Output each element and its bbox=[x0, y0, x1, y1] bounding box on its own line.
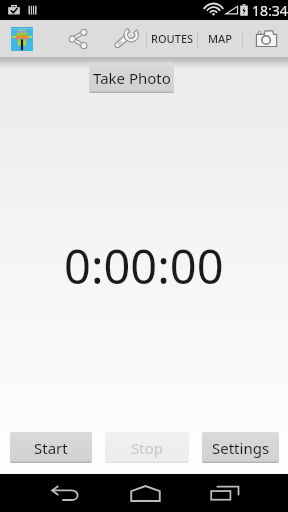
staticText: Start bbox=[34, 438, 68, 458]
button[interactable]: Stop bbox=[105, 432, 189, 463]
button[interactable]: Back bbox=[40, 474, 90, 512]
staticText: 18:34 bbox=[252, 1, 288, 20]
button[interactable]: App bbox=[6, 24, 38, 54]
staticText: Settings bbox=[212, 438, 270, 458]
staticText: 0:00:00 bbox=[64, 234, 224, 292]
button[interactable]: Home bbox=[120, 474, 170, 512]
button[interactable]: Share bbox=[63, 25, 92, 53]
staticText: Take Photo bbox=[93, 68, 171, 88]
staticText: ROUTES bbox=[151, 31, 194, 46]
button[interactable]: Camera bbox=[243, 20, 288, 57]
button[interactable]: Take Photo bbox=[89, 62, 174, 93]
button[interactable]: ROUTES bbox=[147, 20, 197, 57]
button[interactable]: MAP bbox=[198, 20, 242, 57]
staticText: MAP bbox=[208, 31, 233, 46]
staticText: Stop bbox=[131, 438, 163, 458]
button[interactable]: Recents bbox=[200, 474, 250, 512]
button[interactable]: Tools bbox=[111, 25, 139, 53]
button[interactable]: Start bbox=[10, 432, 92, 463]
button[interactable]: Settings bbox=[202, 432, 279, 463]
